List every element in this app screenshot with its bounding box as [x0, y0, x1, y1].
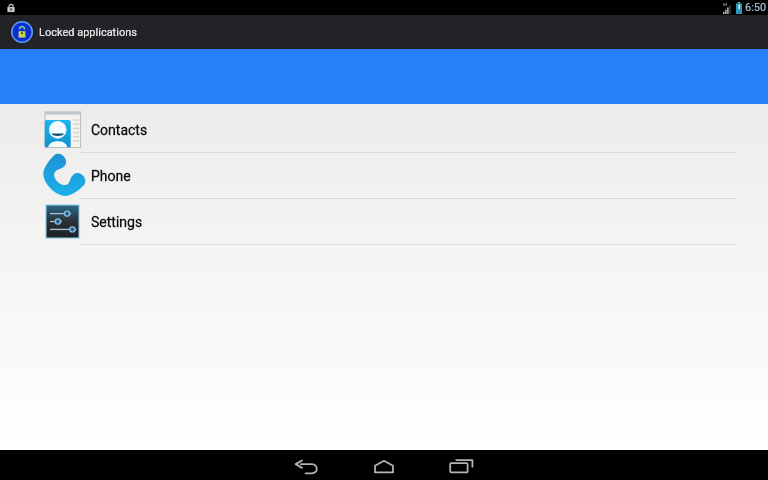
staticText: 6:50 [745, 1, 767, 14]
staticText: Locked applications [39, 26, 137, 39]
button[interactable]: Back [289, 450, 327, 480]
staticText: Contacts [91, 122, 148, 138]
button[interactable]: Home [365, 450, 403, 480]
button[interactable]: Contacts [0, 107, 768, 153]
staticText: Settings [91, 214, 143, 230]
button[interactable]: Phone [0, 153, 768, 199]
button[interactable]: Settings [0, 199, 768, 245]
button[interactable]: Locked applications [0, 15, 768, 49]
button[interactable]: Recent apps [442, 450, 480, 480]
staticText: Phone [91, 168, 131, 184]
